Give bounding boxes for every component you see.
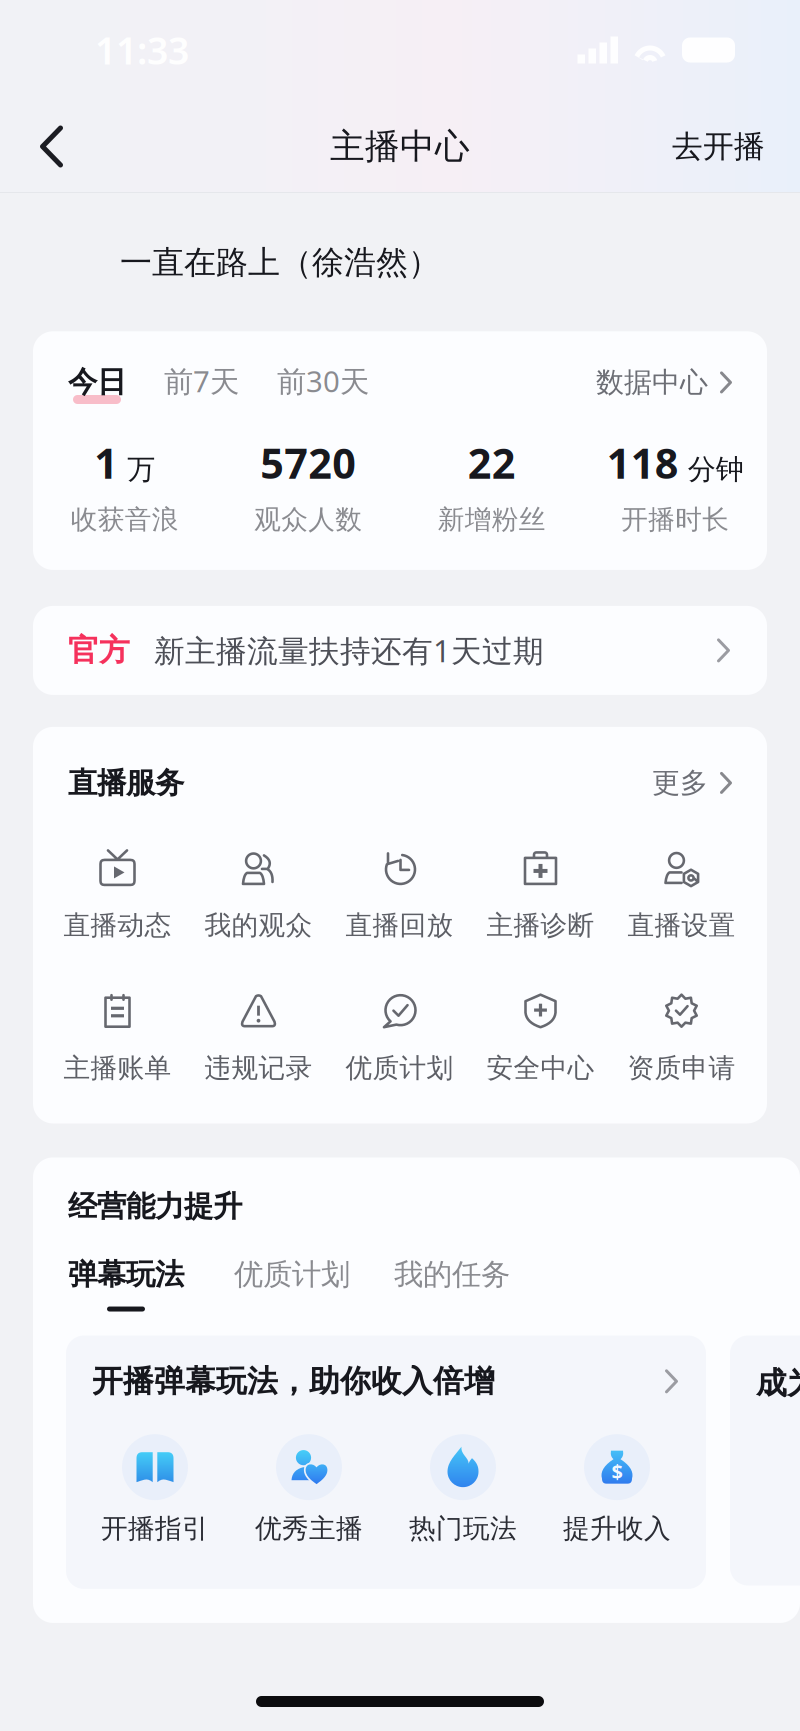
staticText: 万 — [127, 452, 155, 487]
button[interactable]: 开播指引 — [78, 1434, 232, 1545]
staticText: 开播指引 — [101, 1512, 209, 1545]
staticText: 新增粉丝 — [438, 503, 546, 536]
button[interactable]: 优质计划 — [329, 991, 470, 1084]
button[interactable]: 优质计划 — [184, 1256, 350, 1292]
staticText: 成为优质主播 — [756, 1364, 800, 1402]
button[interactable]: 资质申请 — [611, 991, 752, 1084]
staticText: 优秀主播 — [255, 1512, 363, 1545]
button[interactable]: 优秀主播 — [232, 1434, 386, 1545]
button[interactable]: 我的任务 — [350, 1256, 510, 1292]
staticText: 主播账单 — [63, 1052, 171, 1084]
staticText: 提升收入 — [563, 1512, 671, 1545]
staticText: 分钟 — [688, 452, 744, 487]
button[interactable]: 去开播 — [656, 100, 781, 193]
button[interactable]: 我的观众 — [188, 848, 329, 942]
button[interactable]: 直播设置 — [611, 848, 752, 942]
staticText: 优质计划 — [345, 1052, 453, 1084]
staticText: 新主播流量扶持还有1天过期 — [154, 630, 544, 671]
button[interactable]: 违规记录 — [188, 991, 329, 1084]
staticText: 经营能力提升 — [68, 1188, 242, 1224]
button[interactable]: 成为优质主播 — [730, 1335, 800, 1585]
staticText: 118 — [607, 435, 679, 490]
button[interactable]: 安全中心 — [470, 991, 611, 1084]
button[interactable]: 热门玩法 — [386, 1434, 540, 1545]
staticText: 主播诊断 — [486, 909, 594, 942]
staticText: 直播设置 — [627, 909, 735, 942]
staticText: 5720 — [260, 435, 356, 490]
button[interactable]: 开播弹幕玩法，助你收入倍增 — [66, 1335, 706, 1589]
staticText: 优质计划 — [234, 1256, 350, 1292]
staticText: 一直在路上（徐浩然） — [120, 243, 440, 282]
button[interactable]: $ — [540, 1434, 694, 1545]
button[interactable]: 更多 — [652, 766, 732, 800]
staticText: 安全中心 — [486, 1052, 594, 1084]
staticText: 前30天 — [277, 361, 369, 400]
staticText: 开播弹幕玩法，助你收入倍增 — [92, 1362, 495, 1400]
button[interactable]: 前7天 — [126, 361, 239, 400]
button[interactable]: 数据中心 — [596, 365, 732, 400]
button[interactable]: 今日 — [68, 364, 126, 400]
button[interactable]: 官方 — [33, 606, 767, 695]
staticText: 22 — [468, 435, 516, 490]
staticText: 去开播 — [672, 128, 765, 165]
button[interactable]: 主播账单 — [47, 991, 188, 1084]
staticText: 我的任务 — [394, 1256, 510, 1292]
staticText: 我的观众 — [204, 909, 312, 942]
staticText: 11:33 — [95, 25, 189, 75]
staticText: 官方 — [68, 632, 130, 669]
staticText: 主播中心 — [330, 125, 470, 168]
button[interactable]: 弹幕玩法 — [68, 1256, 184, 1311]
staticText: 弹幕玩法 — [68, 1256, 184, 1292]
staticText: 直播回放 — [345, 909, 453, 942]
staticText: 1 — [94, 435, 118, 490]
button[interactable]: 直播回放 — [329, 848, 470, 942]
staticText: 开播时长 — [621, 503, 729, 536]
button[interactable]: Back — [14, 100, 89, 193]
staticText: 违规记录 — [204, 1052, 312, 1084]
staticText: 数据中心 — [596, 365, 708, 400]
staticText: 热门玩法 — [409, 1512, 517, 1545]
staticText: 观众人数 — [254, 503, 362, 536]
staticText: 前7天 — [164, 361, 239, 400]
staticText: $ — [611, 1458, 622, 1484]
staticText: 更多 — [652, 766, 708, 800]
staticText: 直播动态 — [63, 909, 171, 942]
staticText: 收获音浪 — [71, 503, 179, 536]
staticText: 今日 — [68, 364, 126, 400]
button[interactable]: 前30天 — [239, 361, 369, 400]
staticText: 直播服务 — [68, 765, 184, 801]
staticText: 资质申请 — [627, 1052, 735, 1084]
button[interactable]: 直播动态 — [47, 848, 188, 942]
button[interactable]: 主播诊断 — [470, 848, 611, 942]
